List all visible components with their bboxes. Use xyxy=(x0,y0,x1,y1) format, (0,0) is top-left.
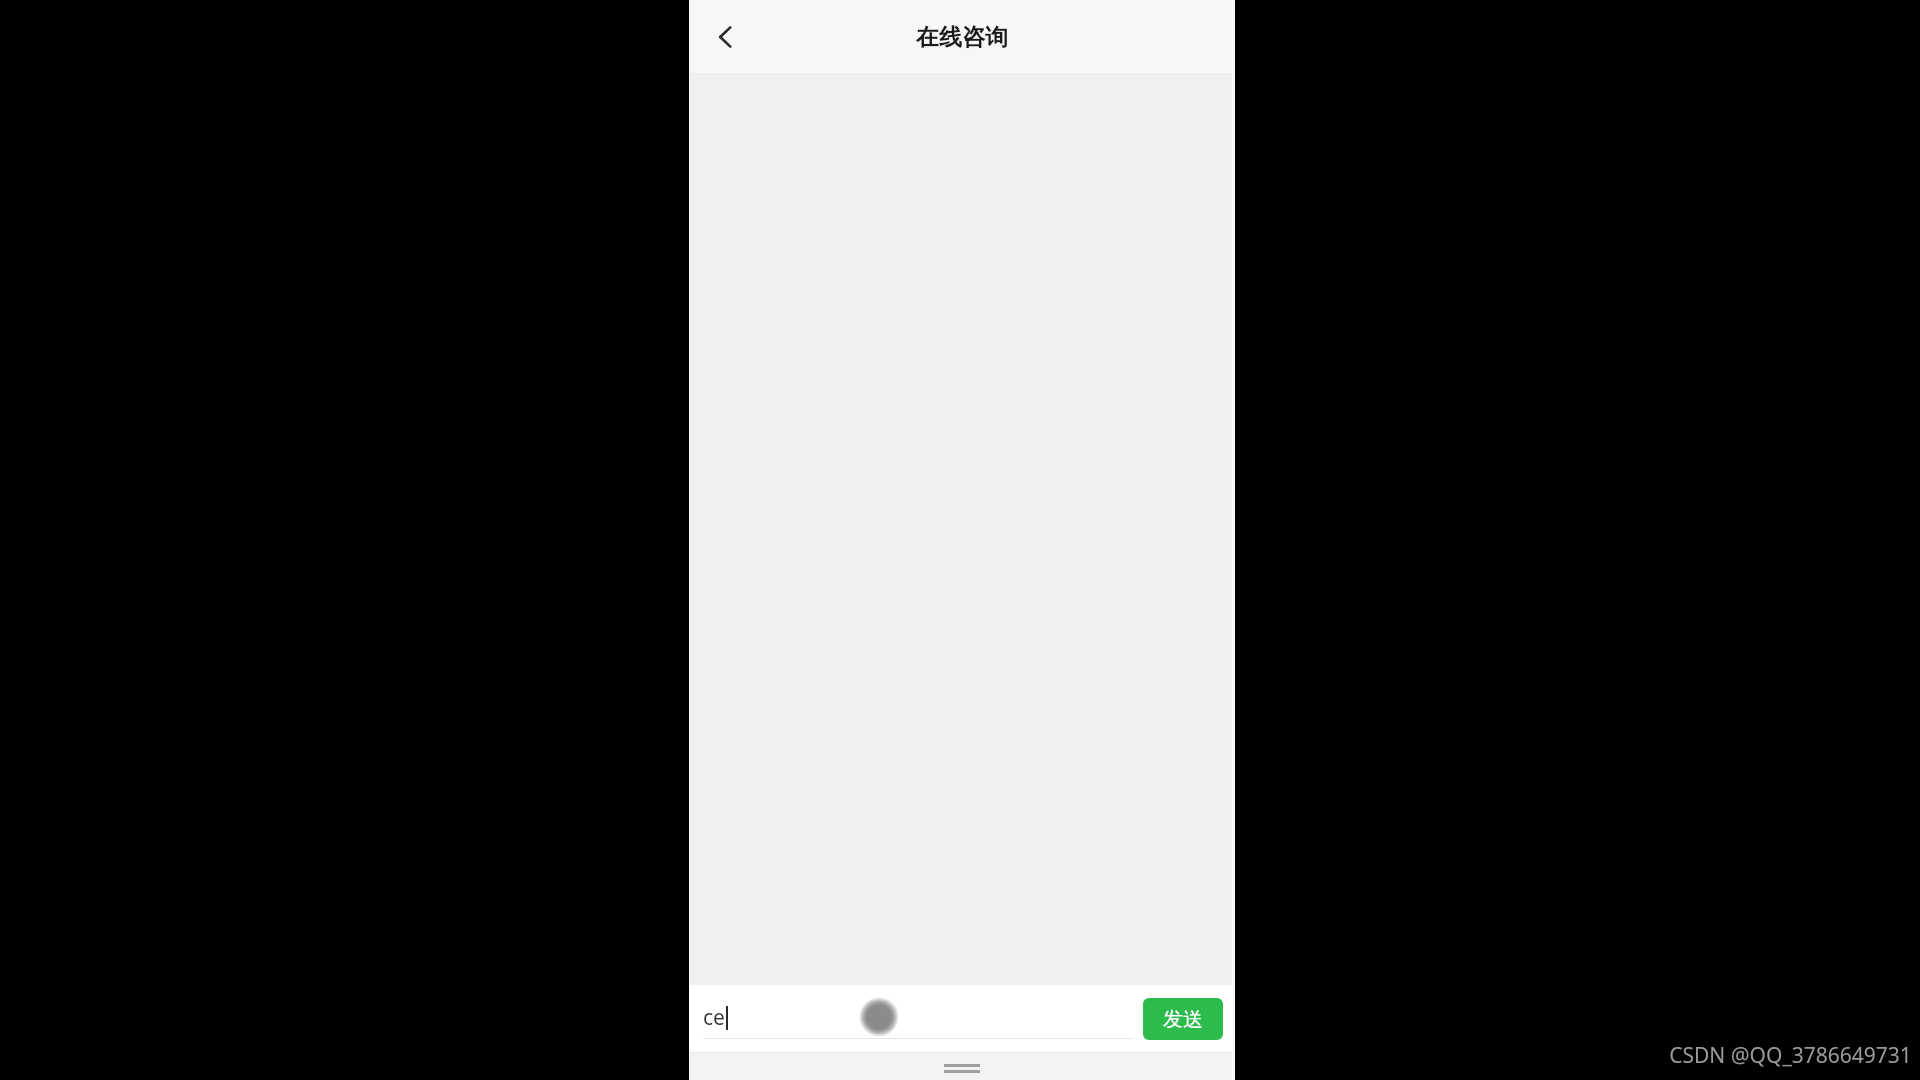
button[interactable]: 发送 xyxy=(1143,998,1223,1040)
button[interactable]: ce xyxy=(703,985,1133,1053)
staticText: 发送 xyxy=(1163,1007,1203,1032)
button[interactable]: Back xyxy=(703,14,749,60)
staticText: ce xyxy=(703,1003,725,1032)
staticText: 在线咨询 xyxy=(916,23,1008,52)
staticText: CSDN @QQ_3786649731 xyxy=(1669,1041,1912,1070)
